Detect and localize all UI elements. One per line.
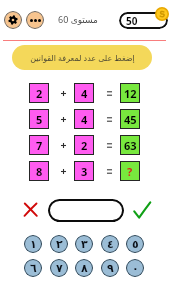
staticText: ٤ (107, 238, 114, 251)
button[interactable]: ٤ (101, 235, 119, 253)
button[interactable]: 2 (75, 136, 93, 154)
button[interactable]: 4 (75, 110, 93, 128)
staticText: 2 (36, 86, 43, 101)
button[interactable]: 45 (121, 110, 139, 128)
button[interactable]: 8 (30, 162, 48, 180)
staticText: 4 (81, 112, 88, 127)
button[interactable]: 63 (121, 136, 139, 154)
button[interactable]: More options (26, 11, 44, 29)
button[interactable] (48, 199, 124, 222)
staticText: ٢ (56, 238, 63, 251)
button[interactable]: ? (121, 162, 139, 180)
button[interactable]: ٣ (75, 235, 93, 253)
button[interactable]: ٠ (126, 259, 144, 277)
staticText: ٦ (30, 262, 37, 275)
button[interactable]: ٦ (24, 259, 42, 277)
button[interactable]: ٧ (50, 259, 68, 277)
button[interactable]: 4 (75, 84, 93, 102)
staticText: ١ (30, 238, 37, 251)
button[interactable]: 50 (119, 12, 168, 29)
staticText: مستوى 60 (58, 13, 98, 25)
staticText: ٣ (81, 238, 88, 251)
staticText: 63 (124, 138, 137, 153)
button[interactable]: Clear answer (21, 200, 39, 218)
button[interactable]: ٢ (50, 235, 68, 253)
button[interactable]: 3 (75, 162, 93, 180)
staticText: 4 (81, 86, 88, 101)
button[interactable]: ٨ (75, 259, 93, 277)
staticText: 3 (81, 164, 88, 179)
staticText: إضغط على عدد لمعرفة القوانين (30, 52, 135, 63)
button[interactable]: ٥ (126, 235, 144, 253)
staticText: ٠ (132, 262, 139, 275)
staticText: 2 (81, 138, 88, 153)
staticText: 12 (124, 86, 137, 101)
button[interactable]: 2 (30, 84, 48, 102)
button[interactable]: Settings (4, 11, 22, 29)
staticText: ٨ (81, 262, 88, 275)
staticText: ٧ (56, 262, 63, 275)
staticText: 7 (36, 138, 43, 153)
button[interactable]: ٩ (101, 259, 119, 277)
button[interactable]: Submit answer (132, 200, 151, 219)
button[interactable]: 12 (121, 84, 139, 102)
button[interactable]: إضغط على عدد لمعرفة القوانين (12, 45, 152, 70)
button[interactable]: 5 (30, 110, 48, 128)
staticText: ٩ (107, 262, 114, 275)
button[interactable]: ١ (24, 235, 42, 253)
staticText: 8 (36, 164, 43, 179)
staticText: ? (127, 164, 133, 179)
staticText: 45 (124, 112, 137, 127)
staticText: 5 (36, 112, 43, 127)
staticText: ٥ (132, 238, 139, 251)
staticText: 50 (126, 14, 138, 28)
button[interactable]: 7 (30, 136, 48, 154)
